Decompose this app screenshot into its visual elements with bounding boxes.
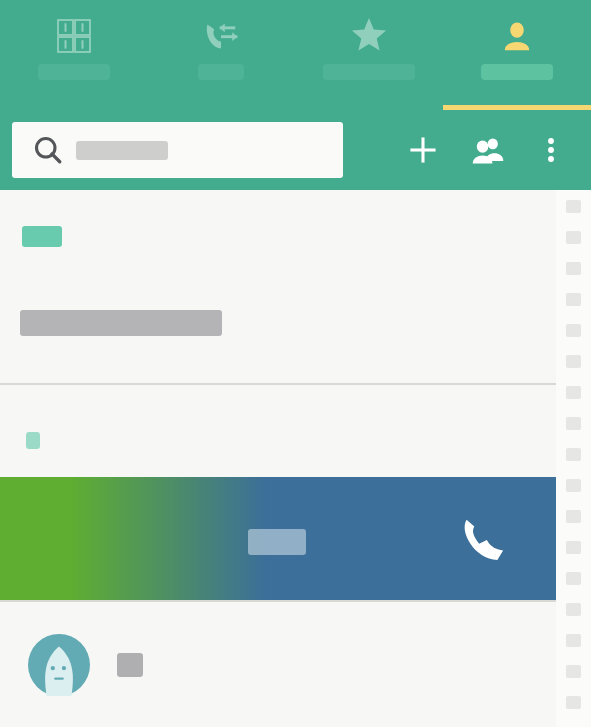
- button[interactable]: [0, 190, 591, 383]
- button[interactable]: [0, 0, 147, 110]
- button[interactable]: [443, 0, 591, 110]
- button[interactable]: [0, 602, 591, 727]
- button[interactable]: More options: [519, 110, 583, 190]
- button[interactable]: Groups: [455, 110, 519, 190]
- button[interactable]: [295, 0, 443, 110]
- button[interactable]: Alphabet index: [556, 190, 591, 727]
- button[interactable]: Call: [0, 477, 591, 600]
- button[interactable]: [12, 122, 343, 178]
- button[interactable]: [147, 0, 295, 110]
- button[interactable]: Add contact: [391, 110, 455, 190]
- button[interactable]: [0, 385, 591, 477]
